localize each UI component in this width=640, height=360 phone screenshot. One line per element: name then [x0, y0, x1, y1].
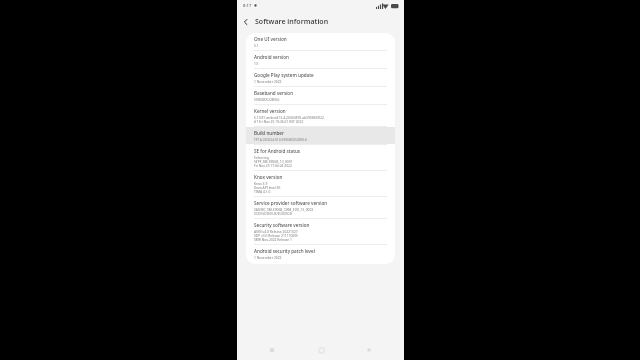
staticText: TIMA 4.1.0 — [254, 189, 271, 193]
staticText: 5.10.81-android13-4-26943490-abS906BXXU2 — [254, 115, 324, 119]
button[interactable]: Baseband version — [246, 87, 395, 104]
staticText: TP1A.220624.014.S906BXXU2BVL6 — [254, 137, 307, 141]
button[interactable]: Android security patch level — [246, 245, 395, 262]
staticText: SAOMC_SM-S906B_OXM_EUX_13_0003 — [254, 207, 314, 211]
staticText: SE for Android status — [254, 148, 301, 154]
staticText: Enforcing — [254, 155, 269, 159]
staticText: Security software version — [254, 222, 310, 228]
staticText: Kernel version — [254, 108, 286, 114]
staticText: 1 November 2022 — [254, 255, 282, 259]
button[interactable]: Build number — [246, 127, 395, 144]
staticText: Knox version — [254, 174, 283, 180]
staticText: 5.1 — [254, 43, 259, 47]
staticText: 8:17 — [243, 3, 252, 9]
button[interactable]: One UI version — [246, 33, 395, 50]
staticText: Android security patch level — [254, 248, 315, 254]
staticText: Baseband version — [254, 90, 294, 96]
staticText: ASKS v4.0 Release 20221027 — [254, 229, 298, 233]
staticText: 13 — [254, 61, 258, 65]
staticText: SDP v3.0 Release 211110005 — [254, 233, 298, 237]
staticText: SMR Nov-2022 Release 1 — [254, 237, 292, 241]
staticText: S906BXXU2BVL6 — [254, 97, 280, 101]
button[interactable]: Kernel version — [246, 105, 395, 126]
staticText: Fri Nov 25 17:06:24 2022 — [254, 163, 292, 167]
button[interactable]: Security software version — [246, 219, 395, 244]
staticText: 1 November 2022 — [254, 79, 282, 83]
staticText: Android version — [254, 54, 289, 60]
button[interactable]: Knox version — [246, 171, 395, 196]
staticText: Knox API level 36 — [254, 185, 281, 189]
staticText: Software information — [255, 17, 329, 27]
staticText: #1 Fri Nov 25 19:36:21 KST 2022 — [254, 119, 304, 123]
button[interactable]: Android version — [246, 51, 395, 68]
button[interactable]: Recents — [259, 340, 285, 360]
button[interactable]: Service provider software version — [246, 197, 395, 218]
staticText: VOD/VOD/EUX/EUX/VOD — [254, 211, 293, 215]
staticText: One UI version — [254, 36, 287, 42]
staticText: Build number — [254, 130, 284, 136]
staticText: SEPF_SM-S906B_13_0001 — [254, 159, 293, 163]
staticText: Service provider software version — [254, 200, 328, 206]
staticText: Knox 3.9 — [254, 181, 268, 185]
button[interactable]: Back — [237, 11, 255, 33]
button[interactable]: Google Play system update — [246, 69, 395, 86]
staticText: Google Play system update — [254, 72, 314, 78]
button[interactable]: SE for Android status — [246, 145, 395, 170]
